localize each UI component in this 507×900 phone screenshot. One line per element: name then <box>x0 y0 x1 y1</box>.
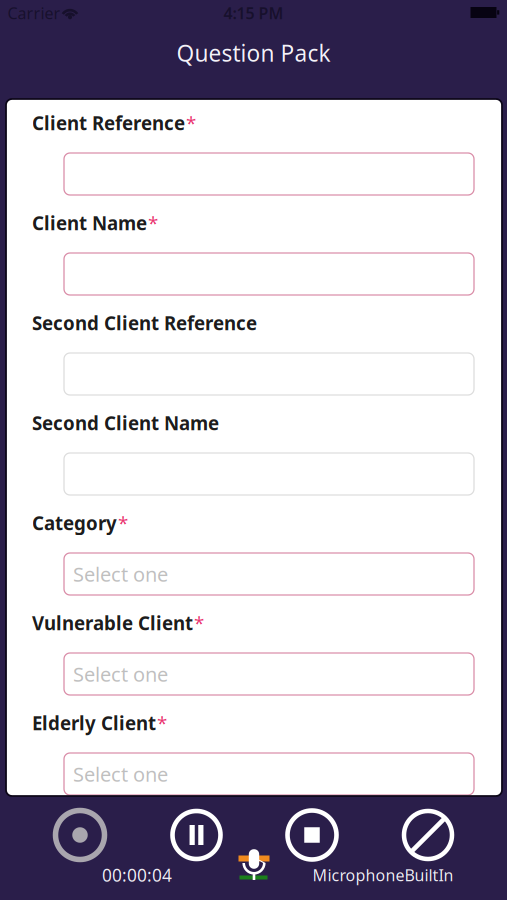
staticText: * <box>118 511 128 535</box>
staticText: Carrier <box>7 2 60 24</box>
button[interactable]: Stop <box>286 809 338 861</box>
button[interactable]: Elderly Client <box>64 753 474 795</box>
staticText: Elderly Client <box>32 711 156 735</box>
staticText: * <box>157 711 167 735</box>
button[interactable]: Vulnerable Client <box>64 653 474 695</box>
button[interactable]: Second Client Name <box>64 453 474 495</box>
staticText: Second Client Name <box>32 411 219 435</box>
staticText: Second Client Reference <box>32 311 257 335</box>
staticText: * <box>148 211 158 235</box>
staticText: Select one <box>73 761 168 787</box>
staticText: Question Pack <box>176 38 330 68</box>
button[interactable]: Second Client Reference <box>64 353 474 395</box>
button[interactable]: Client Name <box>64 253 474 295</box>
staticText: 00:00:04 <box>102 863 172 886</box>
staticText: 4:15 PM <box>223 2 283 24</box>
staticText: * <box>186 111 196 135</box>
staticText: Select one <box>73 561 168 587</box>
staticText: Vulnerable Client <box>32 611 193 635</box>
staticText: Select one <box>73 661 168 687</box>
button[interactable]: Client Reference <box>64 153 474 195</box>
button[interactable]: Cancel <box>402 809 454 861</box>
button[interactable]: Category <box>64 553 474 595</box>
staticText: * <box>194 611 204 635</box>
button[interactable]: Record <box>54 809 106 861</box>
staticText: Category <box>32 511 117 535</box>
staticText: Client Reference <box>32 111 185 135</box>
button[interactable]: Pause <box>170 809 222 861</box>
staticText: MicrophoneBuiltIn <box>312 864 453 886</box>
staticText: Client Name <box>32 211 147 235</box>
